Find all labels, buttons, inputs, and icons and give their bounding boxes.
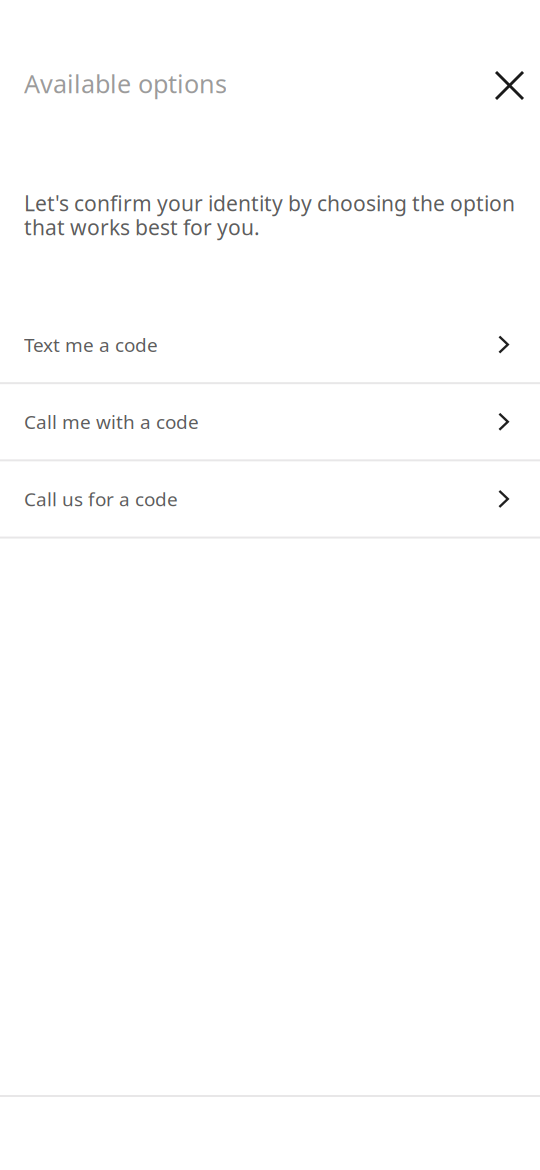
staticText: Text me a code (24, 332, 158, 357)
staticText: that works best for you. (24, 213, 260, 241)
button[interactable]: Text me a code (0, 307, 540, 382)
staticText: Call me with a code (24, 409, 199, 434)
button[interactable]: Call me with a code (0, 384, 540, 459)
staticText: Available options (24, 67, 227, 100)
button[interactable]: Close (480, 60, 526, 111)
button[interactable]: Call us for a code (0, 461, 540, 537)
staticText: Let's confirm your identity by choosing … (24, 189, 515, 217)
staticText: Call us for a code (24, 486, 178, 511)
